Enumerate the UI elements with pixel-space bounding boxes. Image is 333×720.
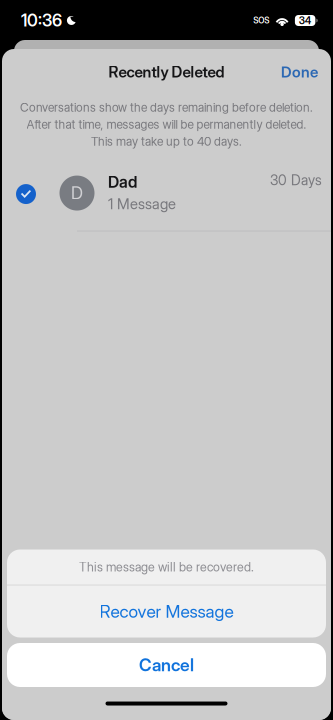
staticText: After that time, messages will be perman…	[26, 117, 306, 131]
staticText: Recently Deleted	[108, 63, 224, 81]
staticText: 10:36	[21, 10, 62, 31]
staticText: This may take up to 40 days.	[91, 134, 242, 148]
staticText: 34	[299, 14, 312, 27]
staticText: 30 Days	[270, 172, 322, 188]
staticText: Cancel	[139, 654, 194, 675]
staticText: SOS	[253, 15, 269, 25]
button[interactable]: Recover Message	[7, 585, 326, 637]
staticText: 1 Message	[108, 195, 176, 213]
button[interactable]: D	[2, 155, 331, 232]
staticText: Dad	[108, 172, 137, 192]
button[interactable]: Cancel	[7, 643, 326, 687]
staticText: This message will be recovered.	[79, 559, 254, 574]
staticText: Recover Message	[99, 601, 233, 622]
staticText: D	[71, 183, 83, 204]
staticText: Conversations show the days remaining be…	[20, 100, 313, 114]
button[interactable]: Done	[268, 54, 331, 90]
staticText: Done	[281, 63, 318, 81]
